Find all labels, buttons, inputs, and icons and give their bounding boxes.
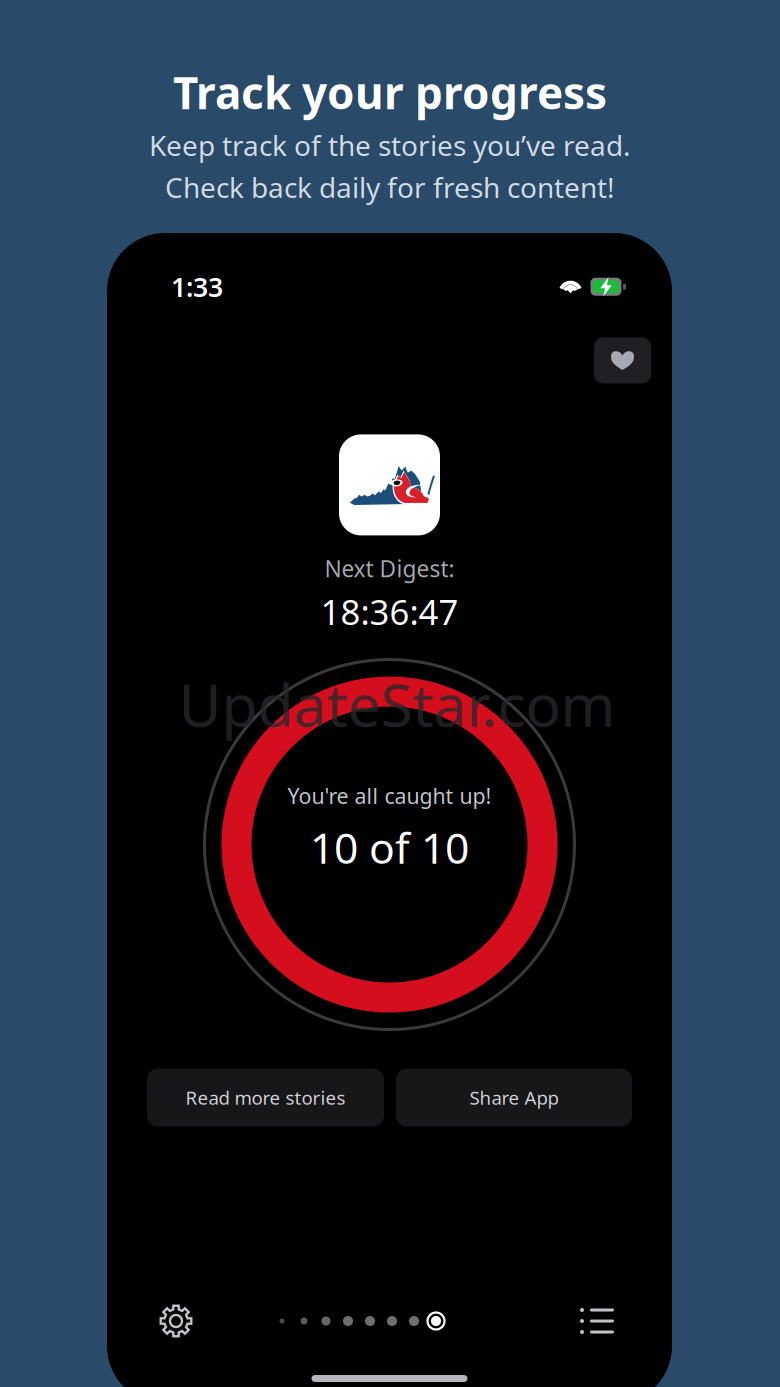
staticText: Track your progress: [173, 63, 607, 121]
button[interactable]: Favorite: [594, 337, 651, 383]
button[interactable]: Share App: [396, 1069, 632, 1127]
staticText: 18:36:47: [320, 588, 458, 634]
staticText: Share App: [469, 1085, 558, 1110]
staticText: Next Digest:: [324, 553, 454, 583]
staticText: 10 of 10: [310, 819, 469, 876]
staticText: Read more stories: [185, 1085, 345, 1110]
staticText: UpdateStar.com: [178, 665, 615, 743]
button[interactable]: Story list: [575, 1299, 619, 1343]
staticText: 1:33: [171, 269, 223, 304]
button[interactable]: Read more stories: [147, 1069, 384, 1127]
button[interactable]: Settings: [153, 1299, 199, 1343]
staticText: Check back daily for fresh content!: [165, 169, 615, 206]
staticText: Keep track of the stories you’ve read.: [149, 126, 631, 164]
staticText: You're all caught up!: [287, 782, 491, 810]
